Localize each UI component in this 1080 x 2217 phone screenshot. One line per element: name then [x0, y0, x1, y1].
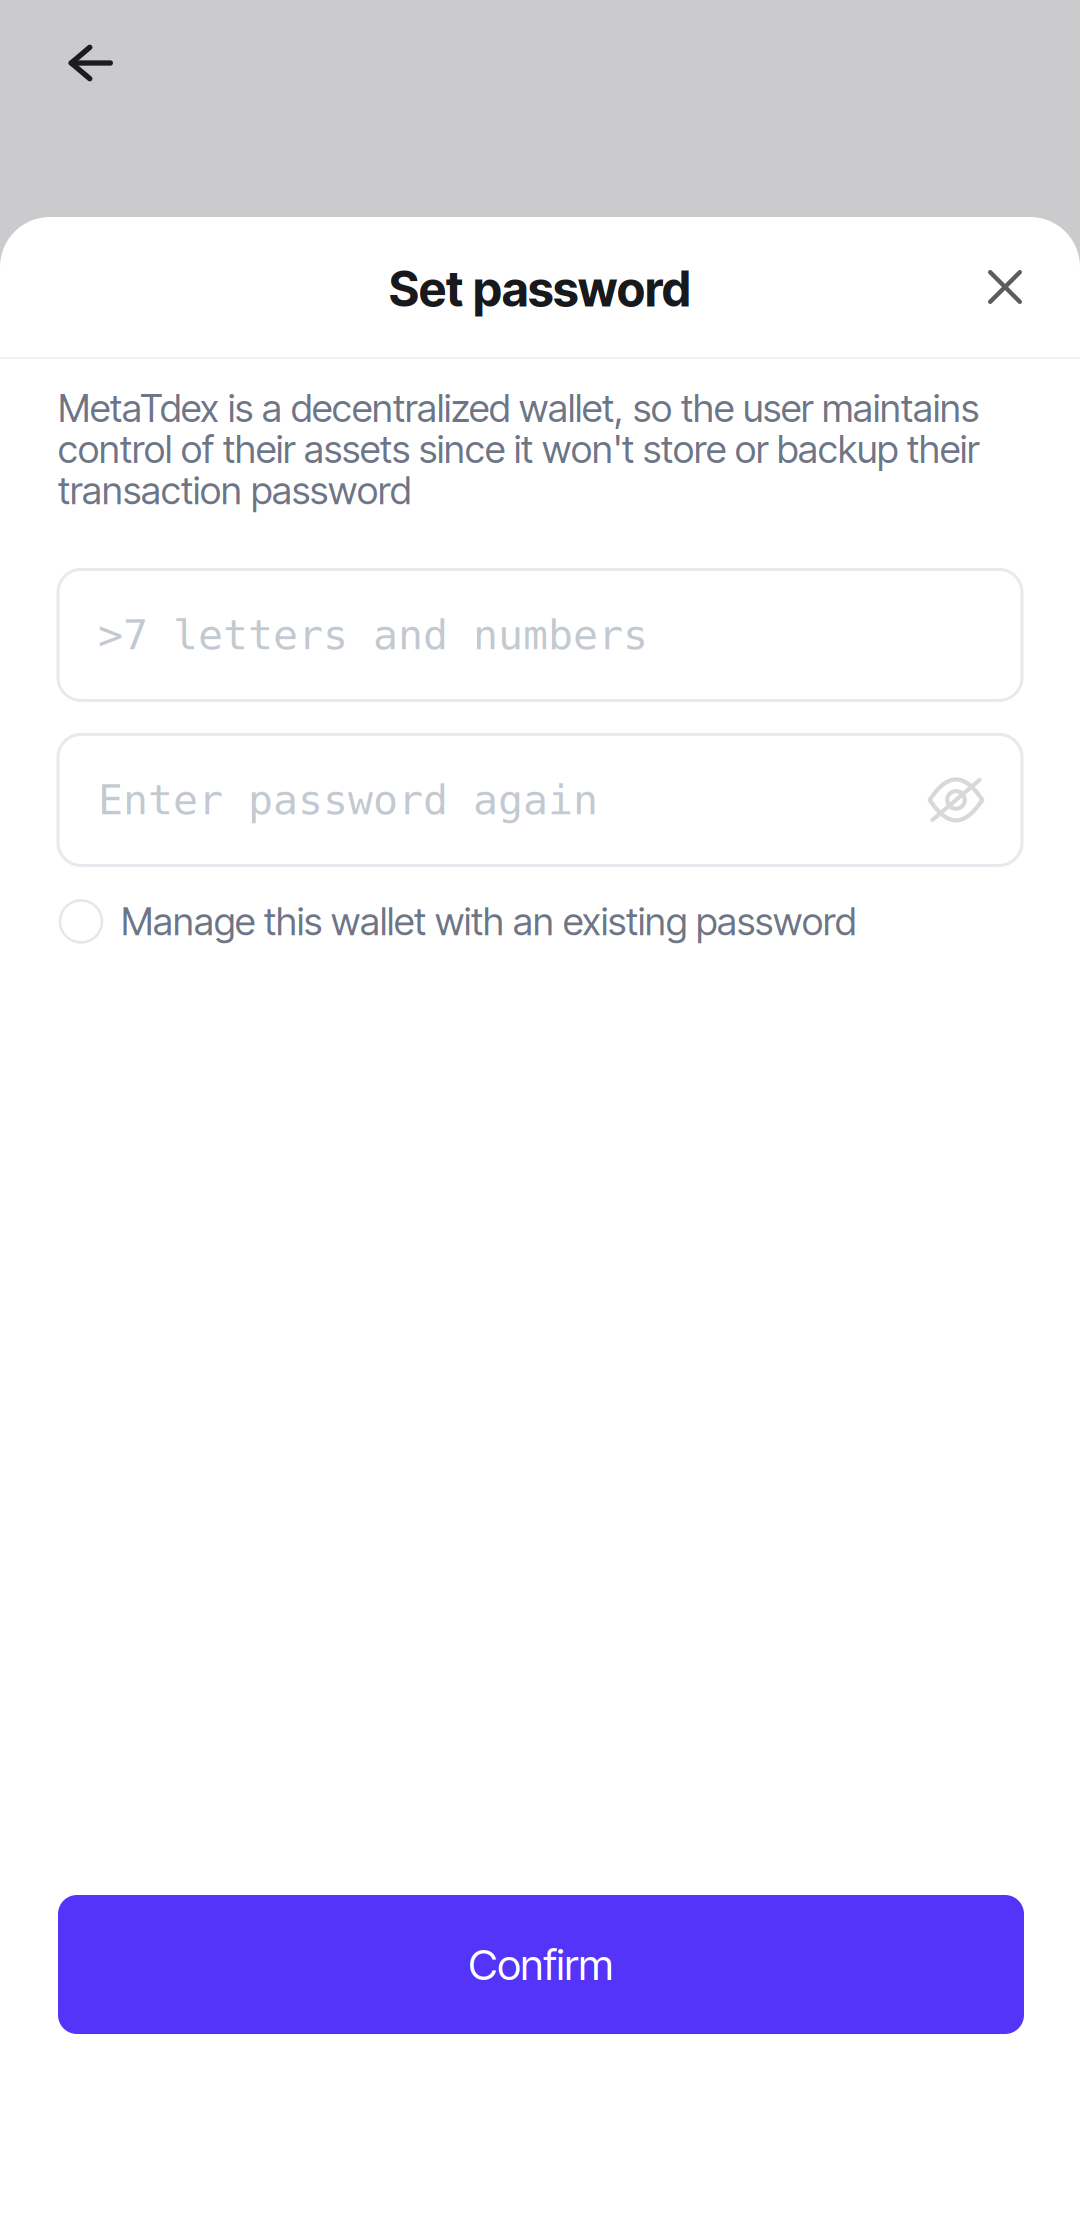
button[interactable]: Close	[964, 250, 1080, 324]
button[interactable]: Back	[0, 0, 135, 104]
staticText: MetaTdex is a decentralized wallet, so t…	[58, 385, 979, 513]
staticText: Enter password again	[98, 776, 598, 824]
button[interactable]: Show password	[928, 778, 984, 822]
staticText: >7 letters and numbers	[98, 611, 648, 659]
staticText: Manage this wallet with an existing pass…	[121, 898, 856, 944]
button[interactable]: Confirm	[58, 1895, 1024, 2034]
staticText: Confirm	[468, 1939, 613, 1990]
button[interactable]: Manage this wallet with an existing pass…	[58, 893, 1022, 949]
staticText: Set password	[389, 260, 691, 318]
